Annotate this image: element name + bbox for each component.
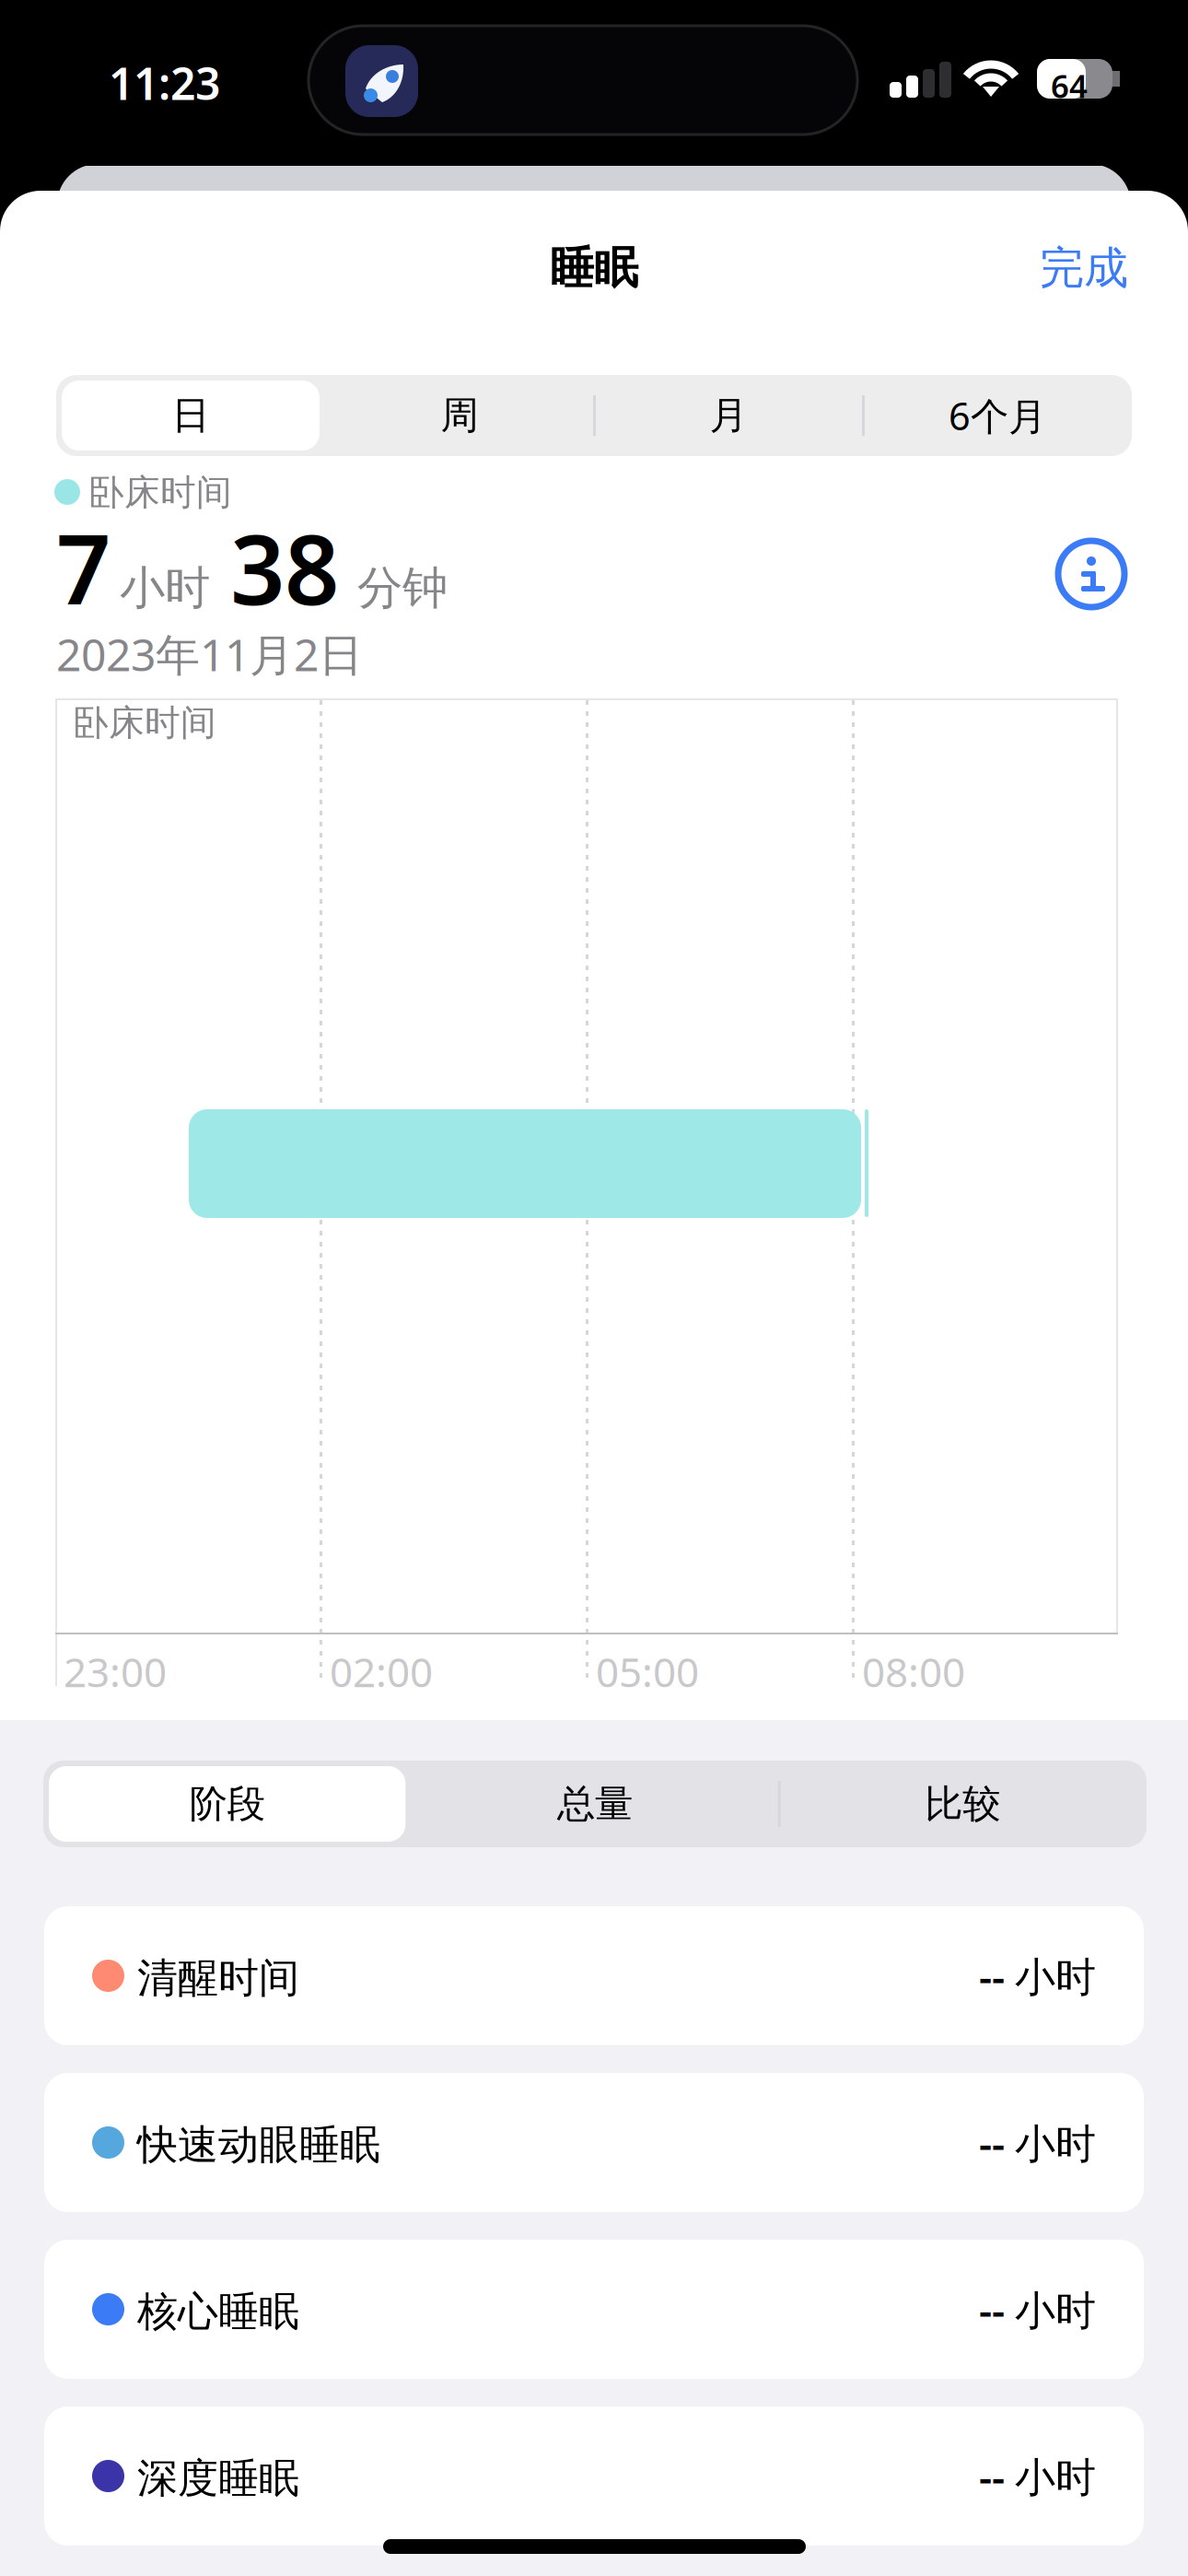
staticText: 08:00 xyxy=(862,1645,965,1698)
button[interactable]: 深度睡眠 xyxy=(44,2406,1144,2546)
staticText: 分钟 xyxy=(357,560,448,616)
staticText: 64 xyxy=(1051,64,1088,107)
button[interactable]: 比较 xyxy=(779,1761,1147,1847)
staticText: 2023年11月2日 xyxy=(56,625,363,683)
staticText: 日 xyxy=(172,392,210,439)
staticText: 23:00 xyxy=(64,1645,167,1698)
staticText: 卧床时间 xyxy=(73,701,216,745)
button[interactable]: 完成 xyxy=(981,236,1128,300)
staticText: 11:23 xyxy=(109,53,220,112)
staticText: 快速动眼睡眠 xyxy=(137,2120,380,2170)
staticText: 月 xyxy=(710,392,747,439)
button[interactable]: 快速动眼睡眠 xyxy=(44,2073,1144,2212)
button[interactable]: 周 xyxy=(325,375,594,456)
staticText: 总量 xyxy=(557,1781,633,1827)
button[interactable]: 月 xyxy=(594,375,863,456)
staticText: 比较 xyxy=(925,1781,1000,1827)
staticText: 小时 xyxy=(120,560,210,616)
staticText: 02:00 xyxy=(330,1645,433,1698)
staticText: -- 小时 xyxy=(979,2449,1096,2503)
staticText: 7 xyxy=(56,504,111,631)
button[interactable]: 阶段 xyxy=(43,1761,411,1847)
staticText: 周 xyxy=(441,392,478,439)
staticText: -- 小时 xyxy=(979,2116,1096,2169)
staticText: 完成 xyxy=(1040,241,1128,295)
button[interactable]: 日 xyxy=(56,375,325,456)
staticText: -- 小时 xyxy=(979,2282,1096,2336)
staticText: 深度睡眠 xyxy=(137,2453,299,2503)
staticText: 清醒时间 xyxy=(137,1953,299,2003)
button[interactable]: More information xyxy=(1041,523,1142,625)
staticText: 6个月 xyxy=(949,390,1046,441)
staticText: 核心睡眠 xyxy=(137,2287,299,2336)
staticText: 卧床时间 xyxy=(88,471,232,515)
button[interactable]: 清醒时间 xyxy=(44,1906,1144,2045)
staticText: 睡眠 xyxy=(550,241,638,295)
staticText: 阶段 xyxy=(189,1781,265,1827)
staticText: 05:00 xyxy=(596,1645,699,1698)
staticText: -- 小时 xyxy=(979,1949,1096,2003)
button[interactable]: 6个月 xyxy=(863,375,1132,456)
button[interactable]: 总量 xyxy=(411,1761,779,1847)
button[interactable]: 核心睡眠 xyxy=(44,2240,1144,2379)
staticText: 38 xyxy=(230,504,339,631)
